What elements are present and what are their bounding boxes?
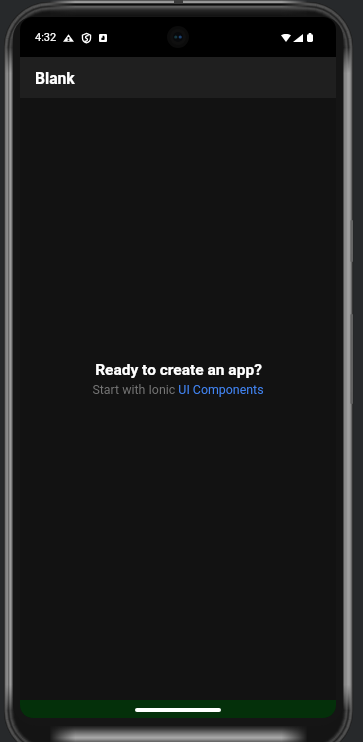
- staticText: Ready to create an app?: [95, 361, 262, 379]
- staticText: Start with Ionic UI Components: [92, 382, 264, 397]
- other: Home: [135, 708, 221, 712]
- button[interactable]: Start with Ionic UI Components: [92, 382, 264, 397]
- staticText: Blank: [35, 69, 75, 87]
- staticText: 4:32: [35, 31, 57, 44]
